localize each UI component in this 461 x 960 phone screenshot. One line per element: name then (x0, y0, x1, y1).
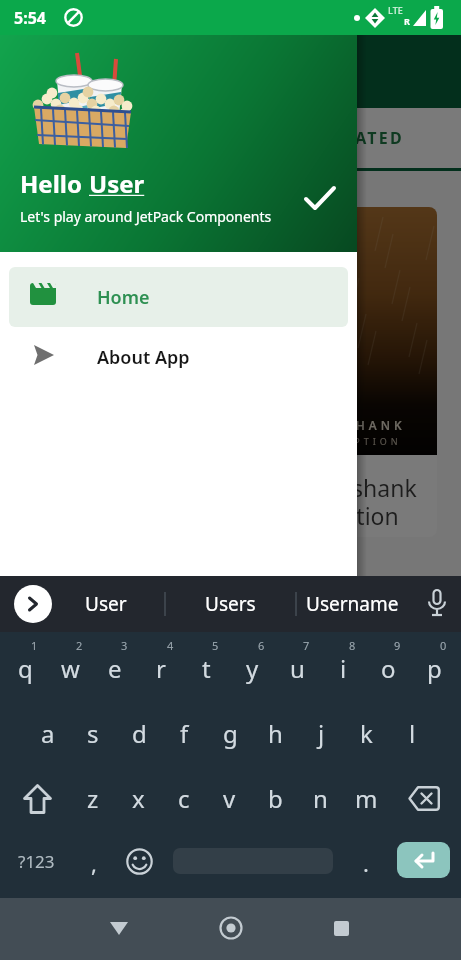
staticText: 1 (31, 638, 38, 653)
button[interactable]: z (71, 774, 115, 822)
staticText: 8 (349, 638, 356, 653)
button[interactable]: d (117, 709, 161, 757)
staticText: Username (306, 591, 399, 617)
staticText: TOP RATED (298, 127, 404, 149)
staticText: User (85, 591, 127, 617)
staticText: , (91, 848, 97, 878)
staticText: r (156, 652, 166, 685)
button[interactable]: x (116, 774, 160, 822)
staticText: k (360, 717, 373, 750)
staticText: 2 (76, 638, 83, 653)
staticText: u (290, 652, 305, 685)
staticText: y (246, 652, 259, 685)
button[interactable]: l (390, 709, 434, 757)
staticText: l (409, 717, 416, 750)
staticText: SHAWSHANK (295, 417, 406, 433)
staticText: 7 (303, 638, 310, 653)
staticText: c (178, 782, 190, 815)
button[interactable] (117, 839, 161, 883)
staticText: 3 (121, 638, 128, 653)
button[interactable]: m (344, 774, 388, 822)
button[interactable]: j (299, 709, 343, 757)
staticText: LTE (388, 4, 403, 16)
button[interactable] (209, 906, 253, 950)
button[interactable]: e (93, 644, 137, 692)
staticText: Users (205, 591, 256, 617)
staticText: d (132, 717, 147, 750)
button[interactable]: c (162, 774, 206, 822)
staticText: v (223, 782, 236, 815)
button[interactable]: r (139, 644, 183, 692)
staticText: R (404, 15, 410, 27)
button[interactable]: SHAWSHANK (240, 207, 437, 537)
staticText: Hello (20, 167, 89, 200)
staticText: 9 (394, 638, 401, 653)
button[interactable]: User (60, 576, 152, 632)
staticText: User (89, 167, 145, 200)
button[interactable]: p (412, 644, 456, 692)
button[interactable]: Home (9, 267, 348, 327)
staticText: s (87, 717, 99, 750)
staticText: x (132, 782, 145, 815)
button[interactable]: f (162, 709, 206, 757)
staticText: t (202, 652, 211, 685)
staticText: . (363, 848, 369, 878)
staticText: o (381, 652, 396, 685)
button[interactable] (397, 842, 450, 878)
button[interactable]: Username (300, 576, 404, 632)
button[interactable] (14, 585, 52, 623)
button[interactable]: w (48, 644, 92, 692)
button[interactable]: h (253, 709, 297, 757)
button[interactable] (15, 776, 60, 821)
button[interactable] (401, 776, 446, 821)
staticText: j (318, 717, 325, 750)
button[interactable]: g (208, 709, 252, 757)
button[interactable]: b (253, 774, 297, 822)
button[interactable]: s (71, 709, 115, 757)
staticText: 0 (440, 638, 447, 653)
staticText: n (313, 782, 328, 815)
button[interactable]: TOP RATED (240, 108, 461, 168)
button[interactable]: q (3, 644, 47, 692)
button[interactable]: ?123 (6, 839, 66, 883)
button[interactable]: Users (184, 576, 276, 632)
staticText: REDEMPTION (304, 435, 402, 447)
button[interactable]: i (321, 644, 365, 692)
staticText: e (108, 652, 122, 685)
button[interactable] (418, 584, 456, 624)
staticText: Home (97, 285, 150, 310)
button[interactable]: t (184, 644, 228, 692)
staticText: g (223, 717, 238, 750)
staticText: The Shawshank Redemption (248, 472, 417, 532)
staticText: a (41, 717, 55, 750)
staticText: Let's play around JetPack Components (20, 207, 272, 226)
staticText: 5:54 (14, 7, 46, 29)
button[interactable]: k (344, 709, 388, 757)
staticText: h (268, 717, 283, 750)
staticText: w (61, 652, 80, 685)
staticText: p (427, 652, 442, 685)
staticText: z (87, 782, 99, 815)
button[interactable]: o (366, 644, 410, 692)
button[interactable]: v (207, 774, 251, 822)
staticText: f (180, 717, 189, 750)
staticText: 6 (258, 638, 265, 653)
staticText: ?123 (18, 850, 55, 873)
button[interactable]: , (79, 841, 109, 885)
staticText: 5 (212, 638, 219, 653)
button[interactable]: About App (9, 333, 348, 379)
staticText: 4 (167, 638, 174, 653)
button[interactable]: y (230, 644, 274, 692)
button[interactable] (319, 906, 363, 950)
button[interactable] (97, 906, 141, 950)
staticText: m (355, 782, 378, 815)
button[interactable]: a (26, 709, 70, 757)
button[interactable]: n (298, 774, 342, 822)
staticText: About App (97, 345, 190, 370)
staticText: q (18, 652, 33, 685)
staticText: b (268, 782, 283, 815)
button[interactable]: u (275, 644, 319, 692)
staticText: i (340, 652, 347, 685)
button[interactable]: . (351, 841, 381, 885)
